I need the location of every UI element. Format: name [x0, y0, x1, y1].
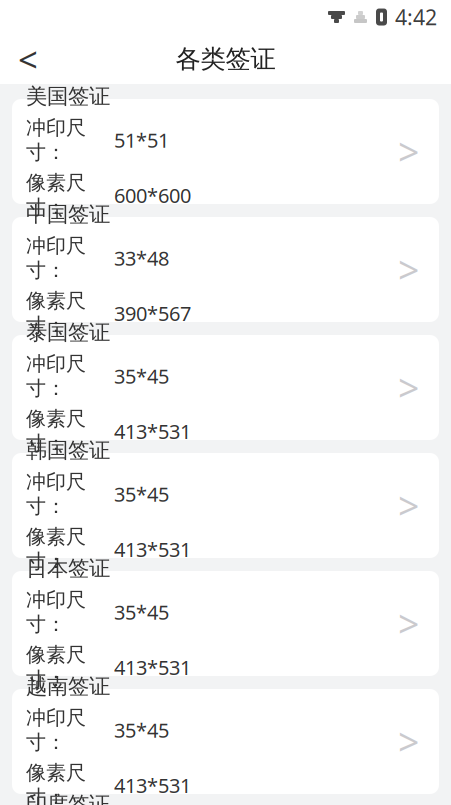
staticText: 各类签证 — [175, 43, 275, 74]
staticText: 像素尺寸： — [26, 643, 86, 692]
staticText: 冲印尺寸： — [26, 233, 86, 283]
staticText: 冲印尺寸： — [26, 469, 86, 519]
staticText: 美国签证 — [26, 83, 110, 109]
staticText: 冲印尺寸： — [26, 587, 86, 637]
staticText: 35*45 — [114, 599, 169, 625]
button[interactable]: 韩国签证 — [12, 453, 439, 558]
staticText: 33*48 — [114, 245, 169, 271]
staticText: 韩国签证 — [26, 437, 110, 463]
staticText: 413*531 — [114, 654, 191, 680]
staticText: 像素尺寸： — [26, 761, 86, 805]
button[interactable]: Back — [6, 36, 50, 82]
staticText: 冲印尺寸： — [26, 351, 86, 401]
staticText: 413*531 — [114, 418, 191, 444]
staticText: 35*45 — [114, 363, 169, 389]
staticText: 印度签证 — [26, 791, 110, 805]
staticText: 像素尺寸： — [26, 525, 86, 574]
staticText: 4:42 — [395, 3, 437, 31]
staticText: 390*567 — [114, 300, 191, 326]
staticText: > — [398, 127, 419, 176]
staticText: 越南签证 — [26, 673, 110, 699]
staticText: > — [398, 481, 419, 530]
button[interactable]: 日本签证 — [12, 571, 439, 676]
button[interactable]: 中国签证 — [12, 217, 439, 322]
staticText: < — [18, 36, 38, 82]
staticText: 413*531 — [114, 772, 191, 798]
staticText: 413*531 — [114, 536, 191, 562]
button[interactable]: 美国签证 — [12, 99, 439, 204]
staticText: 51*51 — [114, 127, 169, 153]
staticText: > — [398, 363, 419, 412]
staticText: 冲印尺寸： — [26, 115, 86, 165]
staticText: > — [398, 599, 419, 648]
staticText: 泰国签证 — [26, 319, 110, 345]
staticText: 像素尺寸： — [26, 289, 86, 338]
staticText: 35*45 — [114, 717, 169, 743]
staticText: > — [398, 245, 419, 294]
staticText: 日本签证 — [26, 555, 110, 581]
staticText: 冲印尺寸： — [26, 705, 86, 755]
staticText: 35*45 — [114, 481, 169, 507]
button[interactable]: 泰国签证 — [12, 335, 439, 440]
staticText: 600*600 — [114, 182, 191, 208]
staticText: > — [398, 717, 419, 766]
staticText: 像素尺寸： — [26, 407, 86, 456]
button[interactable]: 越南签证 — [12, 689, 439, 794]
staticText: 像素尺寸： — [26, 171, 86, 220]
staticText: 中国签证 — [26, 201, 110, 227]
